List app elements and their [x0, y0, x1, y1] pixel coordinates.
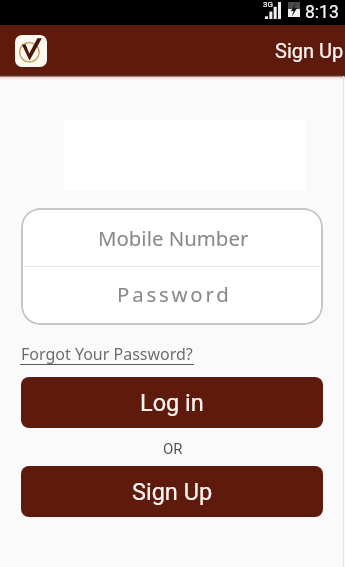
staticText: Forgot Your Password? — [21, 343, 193, 365]
staticText: Sign Up — [275, 39, 344, 62]
staticText: Password — [117, 280, 232, 308]
staticText: OR — [163, 440, 183, 458]
button[interactable]: Mobile Number — [21, 208, 323, 266]
staticText: 3G — [263, 0, 273, 9]
button[interactable]: App logo — [15, 35, 47, 67]
staticText: 8:13 — [305, 2, 339, 23]
button[interactable]: Password — [21, 267, 323, 325]
staticText: Sign Up — [132, 478, 213, 506]
button[interactable]: Sign Up — [275, 39, 344, 62]
button[interactable]: Sign Up — [21, 466, 323, 517]
button[interactable]: Forgot Your Password? — [20, 341, 195, 367]
staticText: Mobile Number — [98, 224, 249, 252]
button[interactable]: Log in — [21, 377, 323, 428]
staticText: Log in — [140, 389, 204, 417]
